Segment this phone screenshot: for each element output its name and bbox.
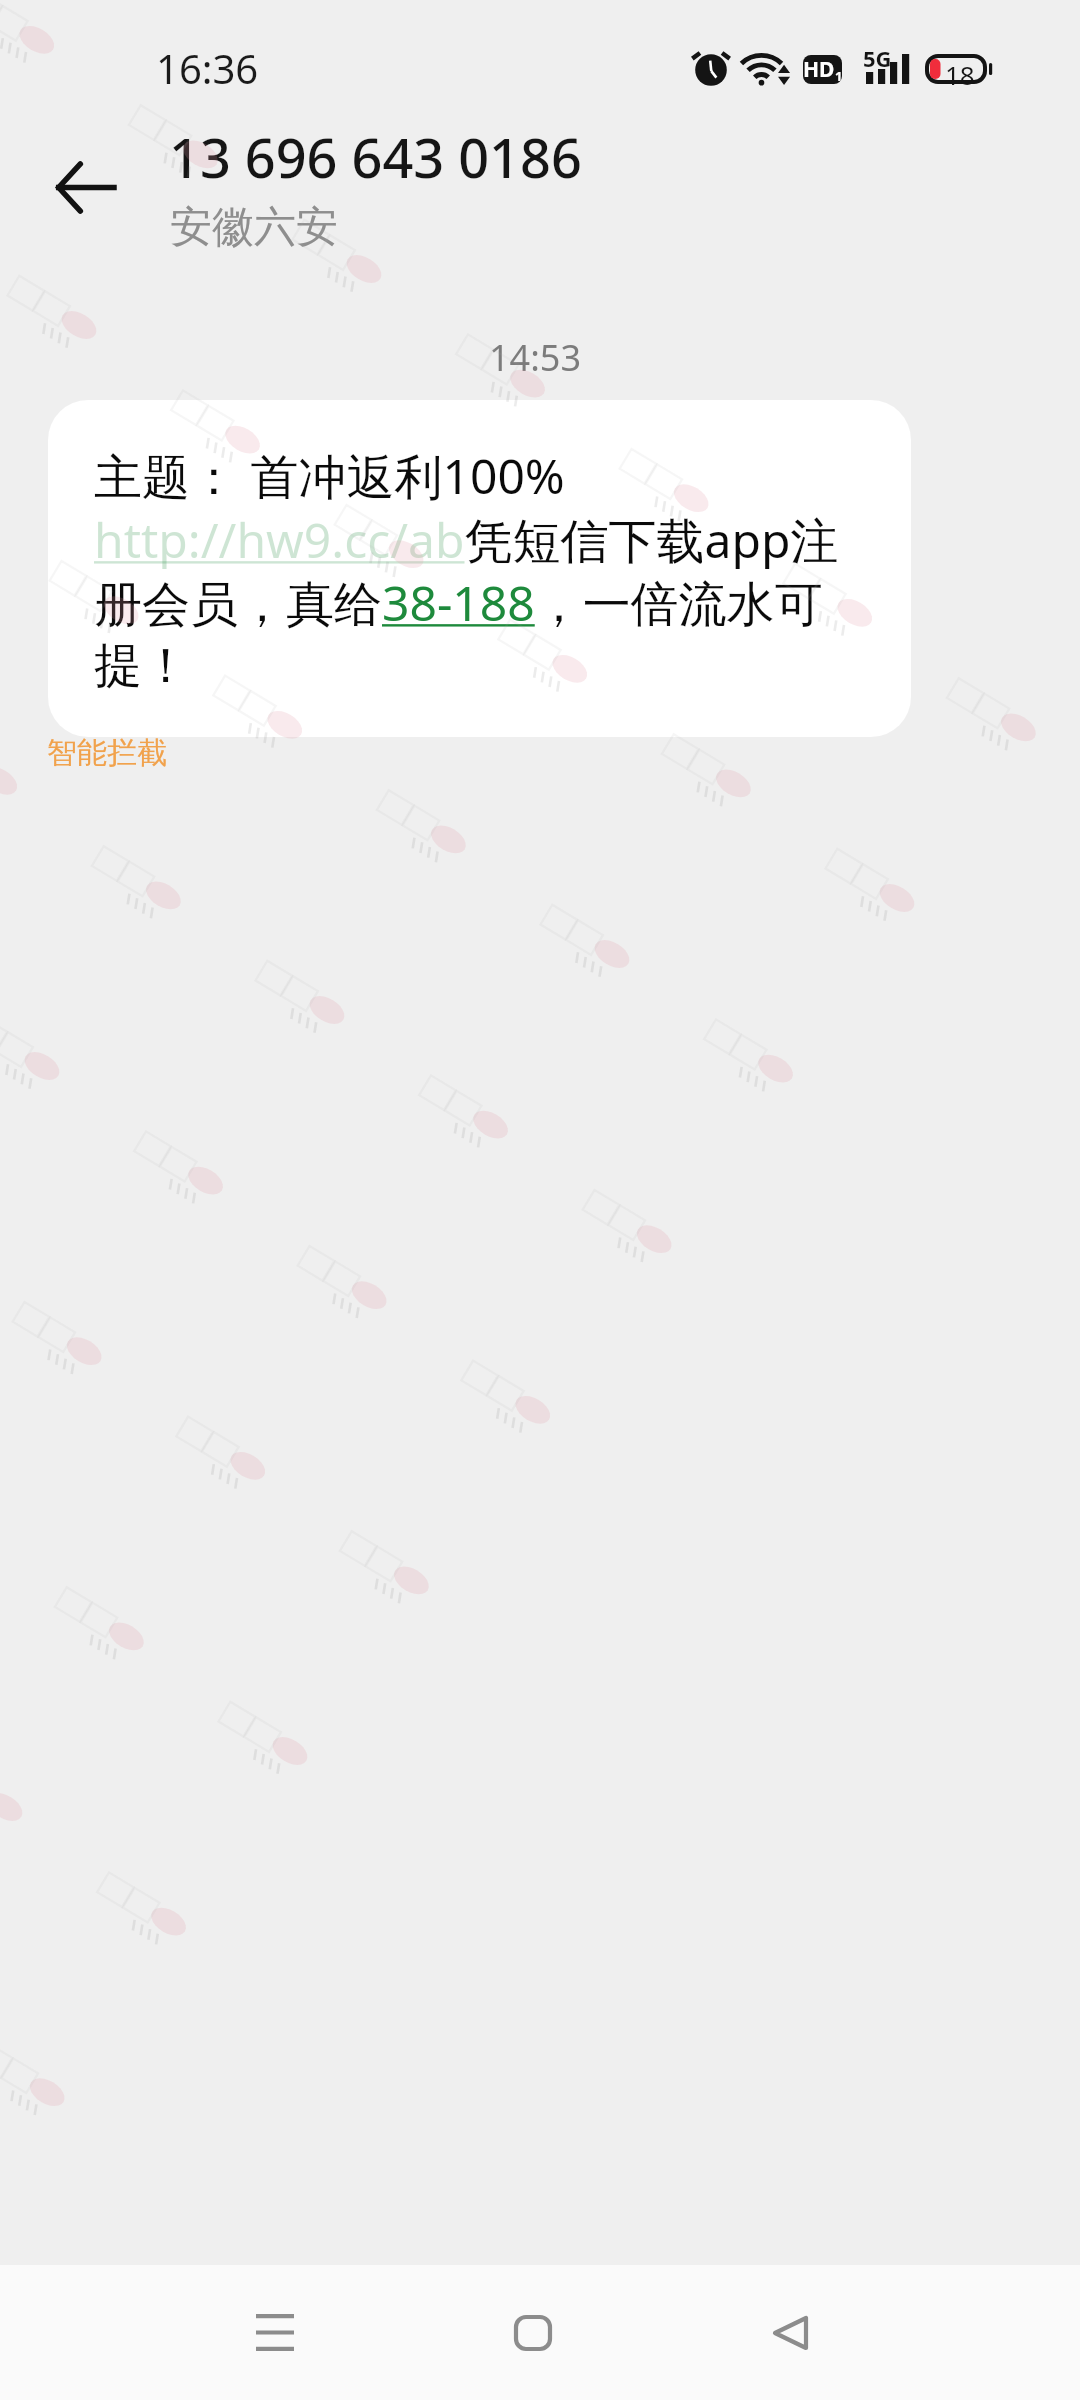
button[interactable]: Home (448, 2265, 618, 2400)
staticText: 智能拦截 (47, 734, 167, 772)
staticText: 5G (863, 43, 892, 73)
button[interactable]: 智能拦截 (43, 730, 171, 776)
button[interactable]: Back (705, 2265, 875, 2400)
button[interactable]: Recent apps (190, 2265, 360, 2400)
staticText: 14:53 (489, 333, 582, 382)
staticText: HD (803, 55, 835, 84)
staticText: 主题： 首冲返利100% http://hw9.cc/ab凭短信下载app注册会… (94, 443, 864, 696)
staticText: 13 696 643 0186 (169, 120, 582, 194)
staticText: 16:36 (156, 41, 259, 95)
button[interactable]: 主题： 首冲返利100% http://hw9.cc/ab凭短信下载app注册会… (48, 400, 911, 737)
button[interactable]: Back (30, 132, 140, 242)
staticText: 18 (945, 57, 975, 87)
staticText: 安徽六安 (170, 201, 338, 254)
staticText: 1 (835, 67, 842, 84)
